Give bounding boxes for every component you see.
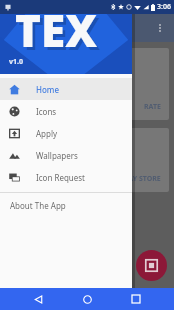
staticText: Icon Request [36,172,85,183]
staticText: Apply [36,128,58,139]
button[interactable]: Recent apps [125,288,147,310]
staticText: Icons [36,106,57,117]
button[interactable]: Icon Request [0,166,132,188]
button[interactable]: About The App [0,193,132,217]
staticText: Wallpapers [36,150,78,161]
staticText: TEX [18,3,100,63]
button[interactable]: Apply [0,122,132,144]
staticText: RATE [144,102,161,112]
staticText: Google Play [13,138,69,152]
button[interactable]: Apply icon pack [136,250,167,281]
staticText: v1.0 [9,57,23,67]
button[interactable]: Home [0,78,132,100]
staticText: TEX [15,0,97,60]
button[interactable]: More options [146,14,174,42]
button[interactable]: Icons [0,100,132,122]
button[interactable]: Home [76,288,98,310]
button[interactable]: Back [27,288,49,310]
staticText: Home [36,84,60,95]
staticText: PLAY STORE [120,174,161,184]
staticText: Free download [13,156,62,166]
button[interactable]: Wallpapers [0,144,132,166]
staticText: 3:06 [157,2,171,12]
staticText: About The App [10,200,66,211]
